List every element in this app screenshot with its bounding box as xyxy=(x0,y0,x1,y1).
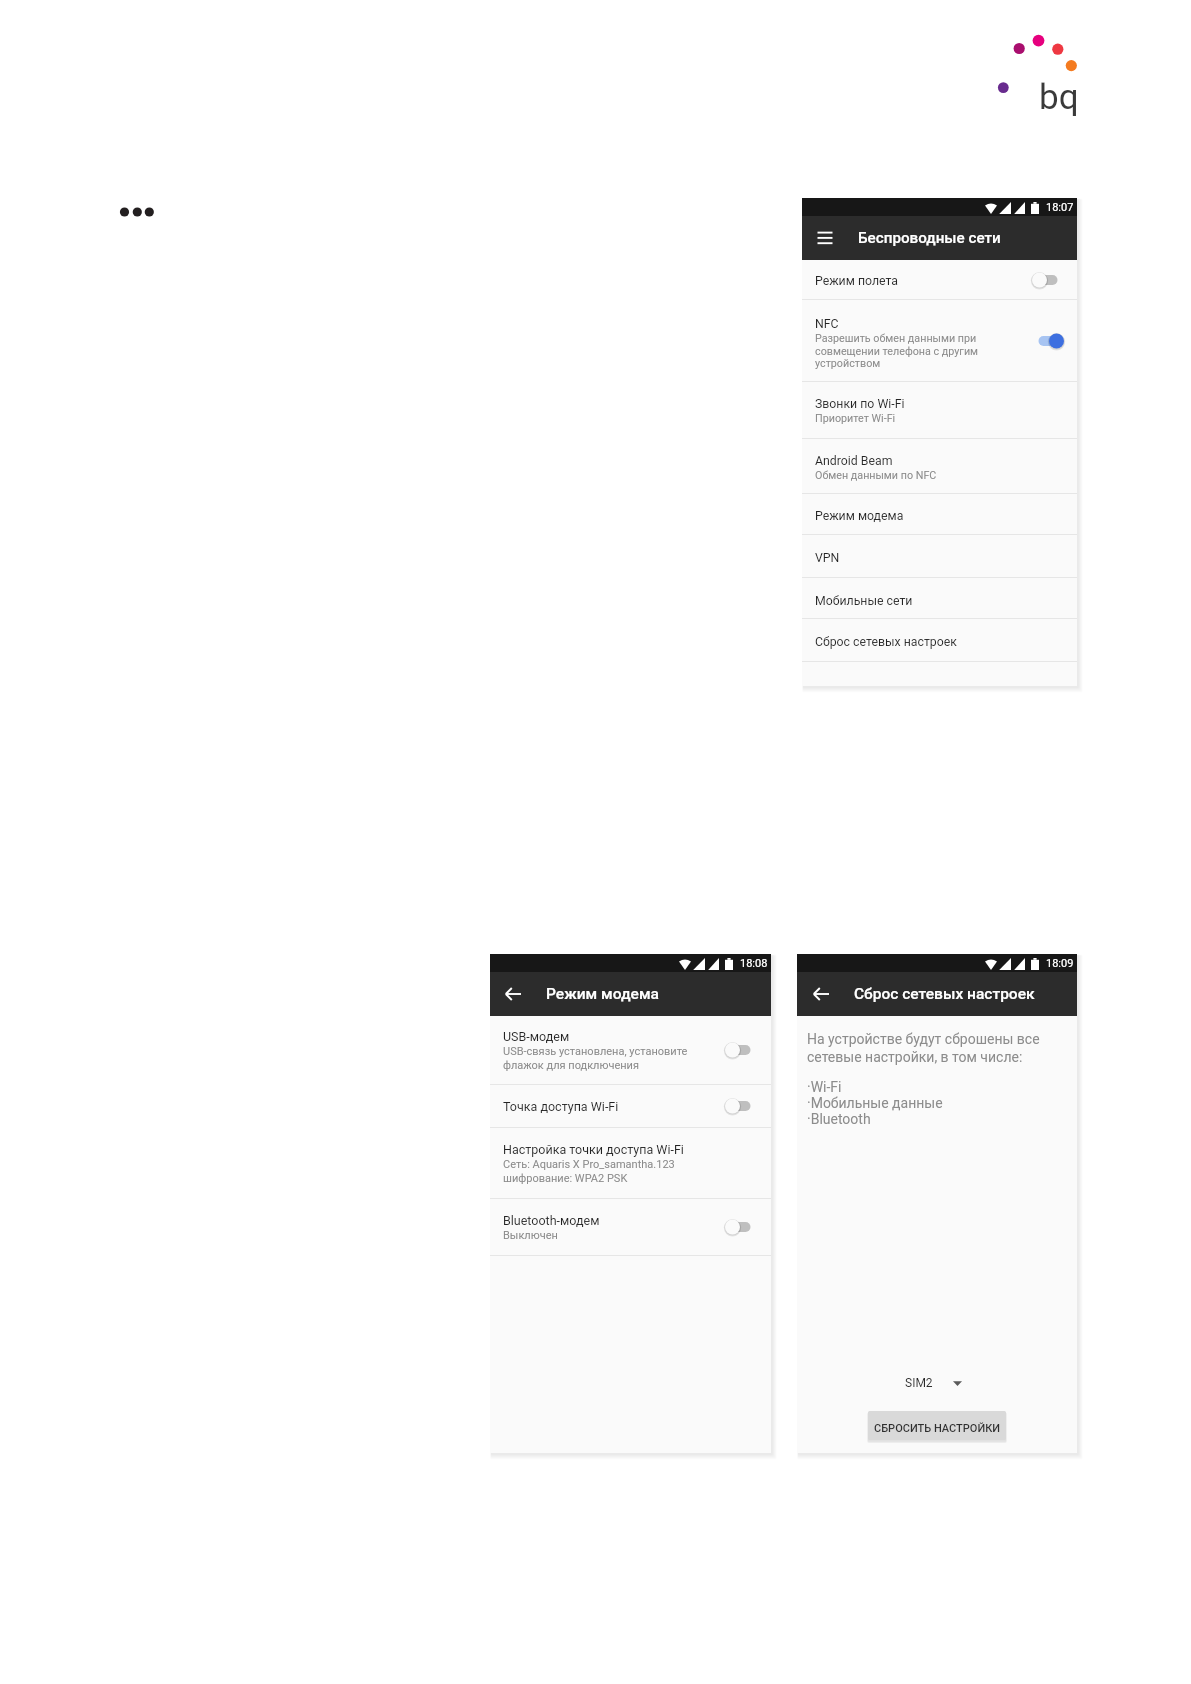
staticText: Режим модема xyxy=(546,985,659,1003)
button[interactable]: Toggle xyxy=(724,1098,755,1114)
staticText: Режим модема xyxy=(815,509,904,523)
button[interactable]: Toggle xyxy=(1031,333,1062,349)
staticText: Сброс сетевых настроек xyxy=(854,985,1035,1003)
staticText: 18:07 xyxy=(1046,201,1074,214)
staticText: SIM2 xyxy=(905,1376,933,1390)
staticText: bq xyxy=(1039,77,1079,118)
button[interactable]: Back xyxy=(809,982,833,1006)
button[interactable]: SIM2 xyxy=(901,1372,966,1394)
staticText: Настройка точки доступа Wi-Fi xyxy=(503,1142,684,1157)
button[interactable]: Точка доступа Wi-Fi xyxy=(490,1085,771,1127)
staticText: Android Beam xyxy=(815,454,893,468)
staticText: USB-модем xyxy=(503,1029,570,1044)
button[interactable]: Toggle xyxy=(724,1219,755,1235)
button[interactable]: Настройка точки доступа Wi-Fi xyxy=(490,1128,771,1198)
staticText: Звонки по Wi-Fi xyxy=(815,397,905,411)
staticText: Беспроводные сети xyxy=(858,229,1001,247)
staticText: Разрешить обмен данными при совмещении т… xyxy=(815,332,979,369)
button[interactable]: Bluetooth-модем xyxy=(490,1199,771,1255)
staticText: NFC xyxy=(815,317,839,331)
button[interactable]: NFC xyxy=(802,300,1077,381)
button[interactable]: VPN xyxy=(802,535,1077,577)
button[interactable]: Режим модема xyxy=(802,494,1077,534)
button[interactable]: Menu xyxy=(813,226,837,250)
staticText: СБРОСИТЬ НАСТРОЙКИ xyxy=(874,1422,1001,1435)
staticText: Bluetooth-модем xyxy=(503,1213,600,1228)
button[interactable]: СБРОСИТЬ НАСТРОЙКИ xyxy=(868,1411,1006,1440)
staticText: 18:09 xyxy=(1046,957,1074,970)
staticText: Мобильные сети xyxy=(815,594,913,608)
staticText: ·Wi-Fi ·Мобильные данные ·Bluetooth xyxy=(807,1079,943,1127)
staticText: Сеть: Aquaris X Pro_samantha.123 шифрова… xyxy=(503,1158,675,1185)
staticText: Сброс сетевых настроек xyxy=(815,635,957,649)
button[interactable]: Мобильные сети xyxy=(802,578,1077,618)
staticText: Приоритет Wi-Fi xyxy=(815,412,896,425)
button[interactable]: Toggle xyxy=(724,1042,755,1058)
button[interactable]: Сброс сетевых настроек xyxy=(802,619,1077,661)
button[interactable]: Back xyxy=(501,982,525,1006)
staticText: Точка доступа Wi-Fi xyxy=(503,1099,619,1114)
staticText: Режим полета xyxy=(815,274,898,288)
button[interactable]: USB-модем xyxy=(490,1016,771,1084)
staticText: Обмен данными по NFC xyxy=(815,469,937,482)
button[interactable]: Режим полета xyxy=(802,260,1077,299)
button[interactable]: Toggle xyxy=(1031,272,1062,288)
staticText: VPN xyxy=(815,551,840,565)
button[interactable]: Android Beam xyxy=(802,439,1077,493)
button[interactable]: Звонки по Wi-Fi xyxy=(802,382,1077,438)
staticText: USB-связь установлена, установите флажок… xyxy=(503,1045,688,1072)
staticText: 18:08 xyxy=(740,957,768,970)
staticText: На устройстве будут сброшены все сетевые… xyxy=(807,1031,1040,1065)
staticText: Выключен xyxy=(503,1229,558,1242)
